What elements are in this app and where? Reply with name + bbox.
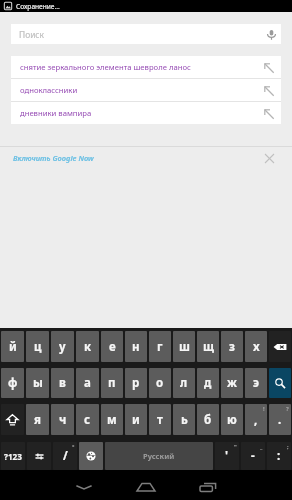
button[interactable]: м (101, 404, 123, 435)
button[interactable]: ; (267, 442, 291, 470)
button[interactable]: б (197, 404, 219, 435)
button[interactable]: р (125, 368, 147, 398)
button[interactable]: Русский (105, 442, 213, 470)
button[interactable]: Search (269, 368, 291, 398)
button[interactable]: Insert suggestion (258, 80, 279, 101)
staticText: й (9, 339, 17, 355)
button[interactable]: л (173, 368, 195, 398)
button[interactable]: ю (221, 404, 243, 435)
staticText: _ (260, 443, 263, 451)
button[interactable]: Shift (1, 404, 24, 435)
button[interactable]: о (149, 368, 171, 398)
staticText: " (234, 443, 237, 451)
button[interactable]: ?123 (1, 442, 25, 470)
staticText: м (107, 412, 117, 428)
staticText: ?123 (4, 451, 22, 462)
staticText: . (278, 412, 282, 428)
staticText: е (109, 339, 116, 355)
staticText: а (84, 375, 91, 391)
staticText: г (157, 339, 163, 355)
button[interactable]: ь (173, 404, 195, 435)
staticText: ° (72, 443, 75, 451)
staticText: д (204, 375, 212, 391)
staticText: ' (225, 448, 229, 464)
button[interactable]: Voice search (261, 24, 281, 44)
staticText: Русский (143, 451, 175, 461)
button[interactable]: а (76, 368, 99, 398)
staticText: к (84, 339, 92, 355)
button[interactable]: г (149, 331, 171, 362)
staticText: х (253, 339, 260, 355)
button[interactable]: к (76, 331, 99, 362)
staticText: - (251, 448, 255, 464)
staticText: з (229, 339, 235, 355)
button[interactable]: " (215, 442, 239, 470)
staticText: ю (227, 412, 237, 428)
staticText: у (59, 339, 66, 355)
button[interactable]: Hide keyboard (53, 470, 115, 500)
button[interactable]: Dismiss (258, 147, 280, 169)
staticText: Поиск (19, 29, 44, 40)
staticText: о (156, 375, 164, 391)
staticText: я (34, 412, 41, 428)
button[interactable]: й (1, 331, 24, 362)
button[interactable]: Input settings (27, 442, 51, 470)
button[interactable]: ° (53, 442, 77, 470)
button[interactable]: _ (241, 442, 265, 470)
button[interactable]: с (76, 404, 99, 435)
button[interactable]: Change language (79, 442, 103, 470)
staticText: ? (286, 405, 289, 413)
button[interactable]: х (245, 331, 267, 362)
staticText: п (108, 375, 116, 391)
staticText: ф (8, 375, 18, 391)
staticText: ! (263, 405, 265, 413)
button[interactable]: н (125, 331, 147, 362)
staticText: р (132, 375, 140, 391)
button[interactable]: снятие зеркального элемента шевроле лано… (11, 56, 281, 78)
button[interactable]: и (125, 404, 147, 435)
staticText: дневники вампира (20, 108, 92, 118)
button[interactable]: д (197, 368, 219, 398)
button[interactable]: ф (1, 368, 24, 398)
button[interactable]: Home (115, 470, 177, 500)
button[interactable]: з (221, 331, 243, 362)
button[interactable]: в (51, 368, 74, 398)
button[interactable]: Backspace (269, 331, 291, 362)
staticText: ц (34, 339, 42, 355)
staticText: одноклассники (20, 85, 78, 95)
staticText: Включить Google Now (13, 153, 94, 163)
button[interactable]: ! (245, 404, 267, 435)
staticText: в (59, 375, 66, 391)
button[interactable]: ц (26, 331, 49, 362)
button[interactable]: Recent apps (177, 470, 239, 500)
button[interactable]: щ (197, 331, 219, 362)
button[interactable]: Insert suggestion (258, 57, 279, 78)
button[interactable]: у (51, 331, 74, 362)
staticText: б (204, 412, 212, 428)
button[interactable]: Включить Google Now (0, 147, 292, 169)
staticText: / (63, 448, 68, 464)
button[interactable]: Поиск (11, 24, 281, 44)
staticText: э (253, 375, 260, 391)
button[interactable]: э (245, 368, 267, 398)
button[interactable]: т (149, 404, 171, 435)
button[interactable]: е (101, 331, 123, 362)
button[interactable]: п (101, 368, 123, 398)
staticText: н (132, 339, 140, 355)
staticText: с (84, 412, 91, 428)
staticText: ч (59, 412, 67, 428)
staticText: ж (227, 375, 237, 391)
button[interactable]: ? (269, 404, 291, 435)
staticText: ь (181, 412, 188, 428)
staticText: ы (33, 375, 43, 391)
button[interactable]: дневники вампира (11, 102, 281, 124)
button[interactable]: ч (51, 404, 74, 435)
button[interactable]: ы (26, 368, 49, 398)
button[interactable]: ж (221, 368, 243, 398)
staticText: : (277, 448, 281, 464)
button[interactable]: я (26, 404, 49, 435)
button[interactable]: одноклассники (11, 79, 281, 101)
button[interactable]: Insert suggestion (258, 103, 279, 124)
button[interactable]: ш (173, 331, 195, 362)
staticText: снятие зеркального элемента шевроле лано… (20, 62, 191, 72)
